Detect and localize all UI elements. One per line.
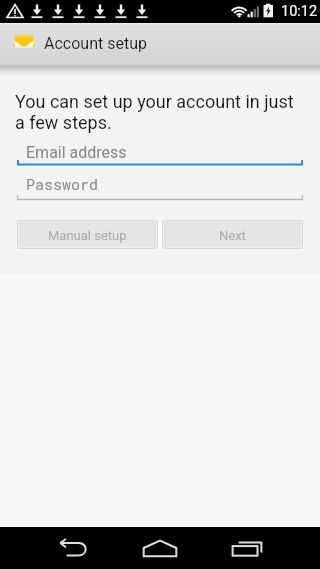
button[interactable]: Email address (17, 145, 303, 173)
button[interactable]: Next (162, 220, 303, 249)
staticText: You can set up your account in just a fe… (15, 91, 300, 133)
staticText: Account setup (44, 34, 147, 53)
staticText: Next (219, 228, 246, 243)
button[interactable]: Home (127, 527, 193, 569)
button[interactable]: Recent apps (214, 527, 280, 569)
staticText: Email address (26, 143, 127, 162)
button[interactable]: Password (17, 180, 303, 208)
button[interactable]: Back (40, 527, 106, 569)
button[interactable]: Account setup (0, 23, 320, 64)
staticText: 10:12 (281, 3, 318, 20)
button[interactable]: Manual setup (17, 220, 158, 249)
staticText: Manual setup (48, 228, 127, 243)
staticText: Password (26, 174, 99, 194)
